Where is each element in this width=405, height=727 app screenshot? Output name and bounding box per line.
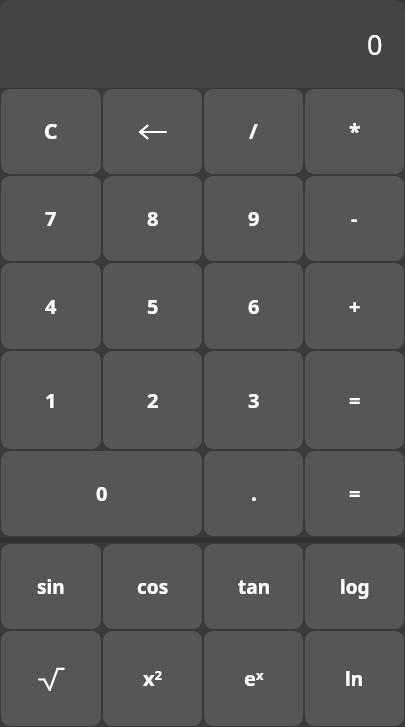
button[interactable]: cos <box>103 544 202 629</box>
staticText: = <box>349 387 361 414</box>
staticText: C <box>44 117 58 146</box>
staticText: - <box>351 205 358 232</box>
button[interactable]: 0 <box>1 451 202 536</box>
staticText: sin <box>37 574 65 600</box>
staticText: 0 <box>96 480 108 507</box>
staticText: 5 <box>147 293 159 320</box>
button[interactable]: Square root <box>1 631 101 726</box>
button[interactable]: 6 <box>204 263 303 349</box>
button[interactable]: 3 <box>204 351 303 449</box>
staticText: = <box>349 480 361 507</box>
button[interactable]: 9 <box>204 176 303 261</box>
staticText: 0 <box>367 26 383 63</box>
staticText: 4 <box>45 293 57 320</box>
staticText: 6 <box>248 293 260 320</box>
staticText: x2 <box>143 665 162 692</box>
button[interactable]: 1 <box>1 351 101 449</box>
button[interactable]: / <box>204 89 303 174</box>
staticText: + <box>349 293 361 320</box>
staticText: ex <box>244 665 264 692</box>
staticText: 1 <box>45 387 57 414</box>
button[interactable]: = <box>305 451 404 536</box>
button[interactable]: - <box>305 176 404 261</box>
staticText: 7 <box>45 205 57 232</box>
staticText: . <box>251 479 257 508</box>
staticText: 3 <box>248 387 260 414</box>
staticText: 9 <box>248 205 260 232</box>
button[interactable]: log <box>305 544 404 629</box>
staticText: cos <box>137 574 169 600</box>
staticText: 8 <box>147 205 159 232</box>
staticText: ln <box>345 666 364 692</box>
button[interactable]: 5 <box>103 263 202 349</box>
button[interactable]: tan <box>204 544 303 629</box>
button[interactable]: x2 <box>103 631 202 726</box>
button[interactable]: + <box>305 263 404 349</box>
staticText: log <box>340 574 370 600</box>
staticText: / <box>249 117 258 146</box>
button[interactable]: Backspace <box>103 89 202 174</box>
staticText: * <box>349 117 361 146</box>
button[interactable]: . <box>204 451 303 536</box>
staticText: 2 <box>147 387 159 414</box>
button[interactable]: sin <box>1 544 101 629</box>
staticText: tan <box>238 574 270 600</box>
button[interactable]: * <box>305 89 404 174</box>
button[interactable]: = <box>305 351 404 449</box>
button[interactable]: 2 <box>103 351 202 449</box>
button[interactable]: 8 <box>103 176 202 261</box>
button[interactable]: ln <box>305 631 404 726</box>
button[interactable]: 4 <box>1 263 101 349</box>
button[interactable]: ex <box>204 631 303 726</box>
button[interactable]: 7 <box>1 176 101 261</box>
button[interactable]: C <box>1 89 101 174</box>
